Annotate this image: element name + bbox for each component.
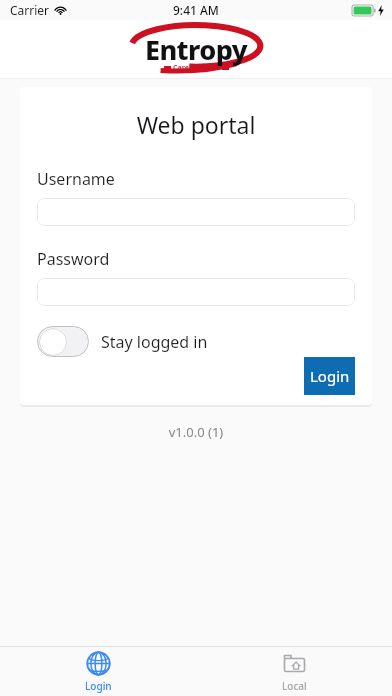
button[interactable]: Local files [244,651,344,693]
button[interactable]: Stay logged in toggle [37,326,355,357]
button[interactable]: Login [304,357,355,395]
staticText: Password [37,248,110,270]
staticText: Entropy [145,31,247,68]
staticText: Login [310,366,350,386]
staticText: Login [85,679,112,693]
staticText: Local [282,679,307,693]
other: Local files [282,651,307,676]
button[interactable] [37,198,355,226]
button[interactable]: Stay logged in toggle [37,326,89,357]
staticText: Username [37,168,115,190]
staticText: Stay logged in [101,331,208,353]
staticText: Carrier [10,2,50,18]
button[interactable] [37,278,355,306]
other: Login, web portal [86,651,111,676]
staticText: Care Systems [173,63,220,73]
staticText: v1.0.0 (1) [0,423,392,441]
staticText: 9:41 AM [173,2,219,18]
button[interactable]: Login, web portal [48,651,148,693]
staticText: Web portal [37,109,355,140]
